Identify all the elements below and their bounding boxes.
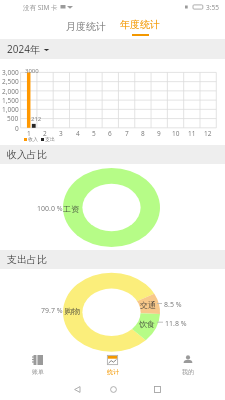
staticText: 6 [108, 129, 112, 136]
button[interactable]: 我的 [150, 352, 225, 378]
button[interactable]: 月度统计 [60, 14, 112, 39]
staticText: 2 [43, 129, 47, 136]
staticText: 账单 [32, 368, 44, 376]
staticText: 没有 SIM 卡 [23, 3, 58, 12]
staticText: 3 [59, 129, 63, 136]
staticText: 11.8 % [165, 319, 187, 329]
staticText: 交通 [140, 300, 156, 310]
staticText: 9 [157, 129, 161, 136]
button[interactable]: Recents [142, 378, 172, 400]
staticText: 5 [92, 129, 96, 136]
button[interactable]: 2024年 [0, 39, 225, 59]
staticText: 500 [7, 114, 19, 123]
staticText: 支出 [45, 136, 55, 142]
staticText: 3000 [25, 67, 39, 75]
staticText: 7 [125, 129, 129, 136]
button[interactable]: 账单 [0, 352, 75, 378]
staticText: 212 [31, 115, 42, 123]
staticText: 统计 [107, 368, 119, 376]
staticText: 0 [15, 124, 19, 133]
staticText: 饮食 [139, 319, 155, 329]
staticText: 月度统计 [66, 20, 106, 33]
staticText: 12 [204, 129, 212, 136]
button[interactable]: 年度统计 [115, 14, 165, 39]
staticText: 支出占比 [7, 253, 47, 266]
staticText: 10 [172, 129, 180, 136]
staticText: 79.7 % [41, 306, 63, 316]
staticText: 2,500 [2, 77, 19, 86]
staticText: 3:55 [206, 3, 219, 12]
staticText: 收入占比 [7, 148, 47, 161]
staticText: 8.5 % [164, 300, 182, 310]
staticText: 收入 [28, 136, 38, 142]
staticText: 年度统计 [120, 18, 160, 31]
staticText: 2,000 [2, 87, 19, 96]
button[interactable]: 统计 [75, 352, 150, 378]
staticText: 购物 [64, 306, 80, 316]
staticText: 1,000 [2, 105, 19, 114]
staticText: 1 [27, 129, 31, 136]
staticText: 1,500 [2, 96, 19, 105]
staticText: 工资 [63, 204, 79, 214]
staticText: 11 [188, 129, 196, 136]
staticText: 2024年 [7, 42, 40, 56]
button[interactable]: Home [98, 378, 128, 400]
staticText: 4 [76, 129, 80, 136]
staticText: 3,000 [2, 68, 19, 77]
staticText: 100.0 % [37, 204, 63, 214]
staticText: 我的 [182, 368, 194, 376]
button[interactable]: Back [62, 378, 92, 400]
staticText: 8 [141, 129, 145, 136]
